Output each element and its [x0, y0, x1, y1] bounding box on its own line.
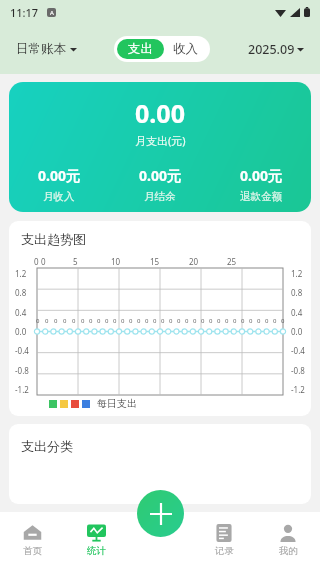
staticText: -0.8 — [291, 365, 305, 376]
button[interactable]: 日常账本 — [14, 37, 79, 61]
staticText: 收入 — [173, 41, 198, 57]
staticText: 0 — [225, 317, 229, 325]
staticText: 0 — [241, 317, 245, 325]
staticText: 0.8 — [291, 287, 303, 298]
staticText: 0.00元 — [38, 166, 80, 185]
button[interactable]: 0.00 — [9, 82, 311, 212]
button[interactable]: Add record — [137, 490, 184, 537]
staticText: A — [50, 9, 54, 17]
staticText: 0 — [257, 317, 261, 325]
staticText: 0 — [265, 317, 269, 325]
staticText: 0 — [137, 317, 141, 325]
staticText: 0 — [281, 317, 285, 325]
staticText: 0 — [145, 317, 149, 325]
staticText: 0 — [81, 317, 85, 325]
staticText: 0 — [97, 317, 101, 325]
staticText: 0 — [89, 317, 93, 325]
staticText: 0 — [185, 317, 189, 325]
staticText: 每日支出 — [97, 397, 137, 410]
staticText: 日常账本 — [16, 41, 66, 57]
staticText: 0 — [161, 317, 165, 325]
staticText: 0 — [233, 317, 237, 325]
staticText: 11:17 — [10, 5, 39, 20]
staticText: 0.4 — [291, 307, 303, 318]
staticText: 15 — [150, 256, 160, 267]
staticText: 月结余 — [144, 190, 176, 203]
staticText: 0 — [113, 317, 117, 325]
staticText: 0.0 — [291, 326, 303, 337]
staticText: 0.00元 — [139, 166, 181, 185]
staticText: -0.4 — [15, 345, 29, 356]
staticText: 0 — [129, 317, 133, 325]
staticText: 记录 — [215, 545, 234, 557]
staticText: 0.8 — [15, 287, 27, 298]
staticText: 支出 — [128, 41, 153, 57]
staticText: 0.0 — [15, 326, 27, 337]
staticText: 0.00元 — [240, 166, 282, 185]
staticText: 统计 — [87, 545, 106, 557]
staticText: 1.2 — [291, 268, 303, 279]
staticText: -1.2 — [291, 384, 305, 395]
staticText: 0 — [105, 317, 109, 325]
staticText: 0 — [193, 317, 197, 325]
staticText: 0.4 — [15, 307, 27, 318]
staticText: 0 — [273, 317, 277, 325]
staticText: 0 — [177, 317, 181, 325]
button[interactable]: 记录 — [192, 512, 256, 568]
staticText: 0 — [34, 256, 39, 267]
button[interactable]: 统计 — [64, 512, 128, 568]
staticText: 0.00 — [135, 96, 185, 130]
staticText: 0 — [153, 317, 157, 325]
staticText: -1.2 — [15, 384, 29, 395]
staticText: 0 — [209, 317, 213, 325]
button[interactable]: 收入 — [164, 39, 207, 59]
button[interactable]: 我的 — [256, 512, 320, 568]
staticText: -0.8 — [15, 365, 29, 376]
staticText: 0 — [54, 317, 58, 325]
staticText: 10 — [111, 256, 121, 267]
staticText: 5 — [73, 256, 78, 267]
staticText: 0 — [249, 317, 253, 325]
staticText: 0 — [45, 317, 49, 325]
staticText: 1.2 — [15, 268, 27, 279]
staticText: 0 — [36, 317, 40, 325]
staticText: 0 — [121, 317, 125, 325]
staticText: 20 — [189, 256, 199, 267]
staticText: -0.4 — [291, 345, 305, 356]
staticText: 2025.09 — [248, 41, 295, 58]
staticText: 月收入 — [43, 190, 75, 203]
staticText: 月支出(元) — [135, 133, 186, 148]
staticText: 0 — [63, 317, 67, 325]
staticText: 0 — [72, 317, 76, 325]
staticText: 0 — [169, 317, 173, 325]
staticText: 支出分类 — [21, 438, 73, 454]
staticText: 0 — [201, 317, 205, 325]
staticText: 我的 — [279, 545, 298, 557]
staticText: 首页 — [23, 545, 42, 557]
button[interactable]: 支出 — [117, 39, 164, 59]
staticText: 支出趋势图 — [21, 231, 86, 247]
staticText: 25 — [227, 256, 237, 267]
button[interactable]: 2025.09 — [246, 37, 306, 62]
staticText: 退款金额 — [240, 190, 282, 203]
button[interactable]: 首页 — [0, 512, 64, 568]
staticText: 0 — [217, 317, 221, 325]
staticText: 0 — [41, 256, 46, 267]
